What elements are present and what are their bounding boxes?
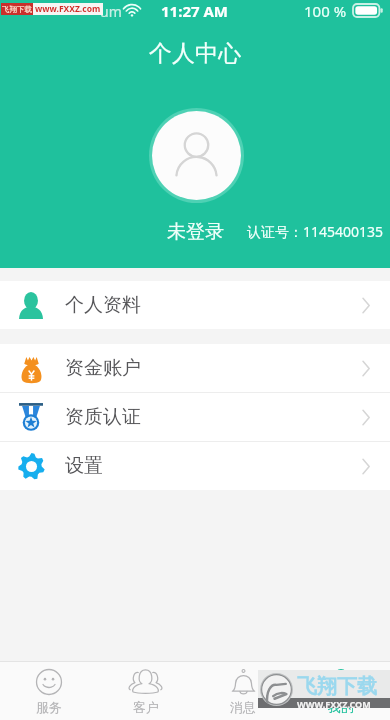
button[interactable]: 我的 — [292, 661, 390, 720]
staticText: 设置 — [65, 454, 103, 478]
staticText: 客户 — [133, 699, 159, 715]
staticText: 资质认证 — [65, 405, 141, 429]
button[interactable]: 个人资料 — [0, 281, 390, 329]
staticText: 我的 — [328, 699, 354, 715]
staticText: um — [100, 2, 122, 21]
staticText: 服务 — [36, 699, 62, 715]
staticText: 资金账户 — [65, 356, 141, 380]
staticText: 认证号：1145400135 — [247, 222, 384, 241]
staticText: 飞翔下载 — [297, 674, 377, 699]
button[interactable]: 资金账户 — [0, 344, 390, 392]
staticText: 100 % — [304, 1, 347, 21]
staticText: 11:27 AM — [161, 1, 228, 21]
staticText: WWW.FXXZ.COM — [297, 698, 371, 710]
staticText: www.FXXZ.com — [35, 3, 101, 15]
button[interactable]: 服务 — [0, 661, 97, 720]
staticText: 飞翔下载 — [2, 5, 32, 14]
button[interactable]: 设置 — [0, 442, 390, 490]
staticText: 消息 — [230, 699, 256, 715]
staticText: 未登录 — [167, 220, 224, 244]
button[interactable]: 消息 — [194, 661, 292, 720]
button[interactable]: 资质认证 — [0, 393, 390, 441]
button[interactable]: 头像 — [152, 111, 241, 200]
staticText: 个人资料 — [65, 293, 141, 317]
button[interactable]: 客户 — [97, 661, 194, 720]
staticText: 个人中心 — [0, 39, 390, 68]
